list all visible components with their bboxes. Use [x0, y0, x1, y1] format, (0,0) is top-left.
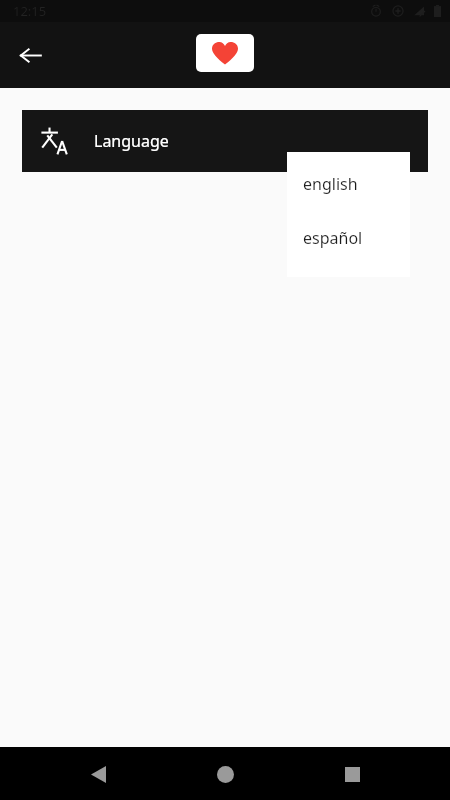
staticText: english: [303, 173, 358, 195]
button[interactable]: Back: [10, 35, 50, 75]
staticText: 12:15: [13, 2, 47, 20]
button[interactable]: english: [287, 166, 410, 202]
button[interactable]: Logo: [196, 34, 254, 72]
button[interactable]: Home: [203, 752, 247, 796]
staticText: español: [303, 227, 363, 249]
staticText: Language: [94, 130, 169, 152]
button[interactable]: Recent apps: [330, 752, 374, 796]
button[interactable]: Language: [22, 110, 428, 172]
button[interactable]: Back: [76, 752, 120, 796]
button[interactable]: español: [287, 220, 410, 256]
